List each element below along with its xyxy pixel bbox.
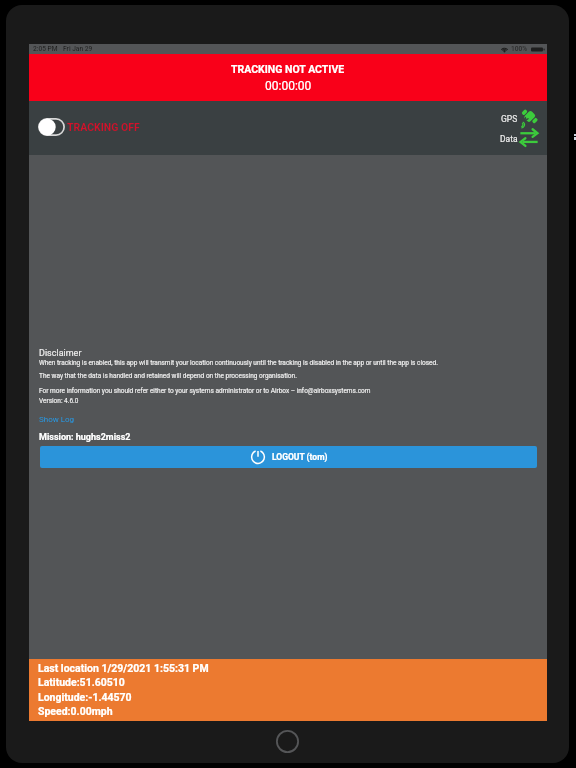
staticText: Latitude:51.60510 xyxy=(38,676,125,688)
staticText: Longitude:-1.44570 xyxy=(38,691,132,703)
staticText: Speed:0.00mph xyxy=(38,705,113,717)
button[interactable]: Data status xyxy=(495,126,547,148)
staticText: For more information you should refer ei… xyxy=(39,387,371,395)
staticText: Mission: hughs2miss2 xyxy=(39,432,131,443)
staticText: 00:00:00 xyxy=(265,79,312,93)
staticText: 100% xyxy=(511,45,528,53)
other: Battery 100 percent xyxy=(531,46,544,53)
button[interactable]: Log out xyxy=(40,446,537,468)
other: Wi-Fi xyxy=(501,46,508,53)
staticText: Fri Jan 29 xyxy=(63,45,93,53)
button[interactable]: Home xyxy=(276,730,299,753)
staticText: TRACKING OFF xyxy=(67,121,140,133)
staticText: The way that the data is handled and ret… xyxy=(39,372,297,380)
button[interactable]: Tracking toggle xyxy=(38,118,140,136)
staticText: LOGOUT (tom) xyxy=(272,452,328,462)
staticText: Last location 1/29/2021 1:55:31 PM xyxy=(38,662,209,674)
other: Log out xyxy=(250,449,266,465)
staticText: Version: 4.6.0 xyxy=(39,397,79,405)
staticText: Disclaimer xyxy=(39,348,82,359)
staticText: Data xyxy=(500,134,518,144)
other: Tracking toggle xyxy=(38,118,65,136)
staticText: TRACKING NOT ACTIVE xyxy=(231,63,345,75)
staticText: When tracking is enabled, this app will … xyxy=(39,359,438,367)
staticText: GPS xyxy=(501,114,518,124)
button[interactable]: Show Log xyxy=(39,415,75,424)
staticText: 2:05 PM xyxy=(33,45,58,53)
button[interactable]: GPS status xyxy=(495,107,547,129)
